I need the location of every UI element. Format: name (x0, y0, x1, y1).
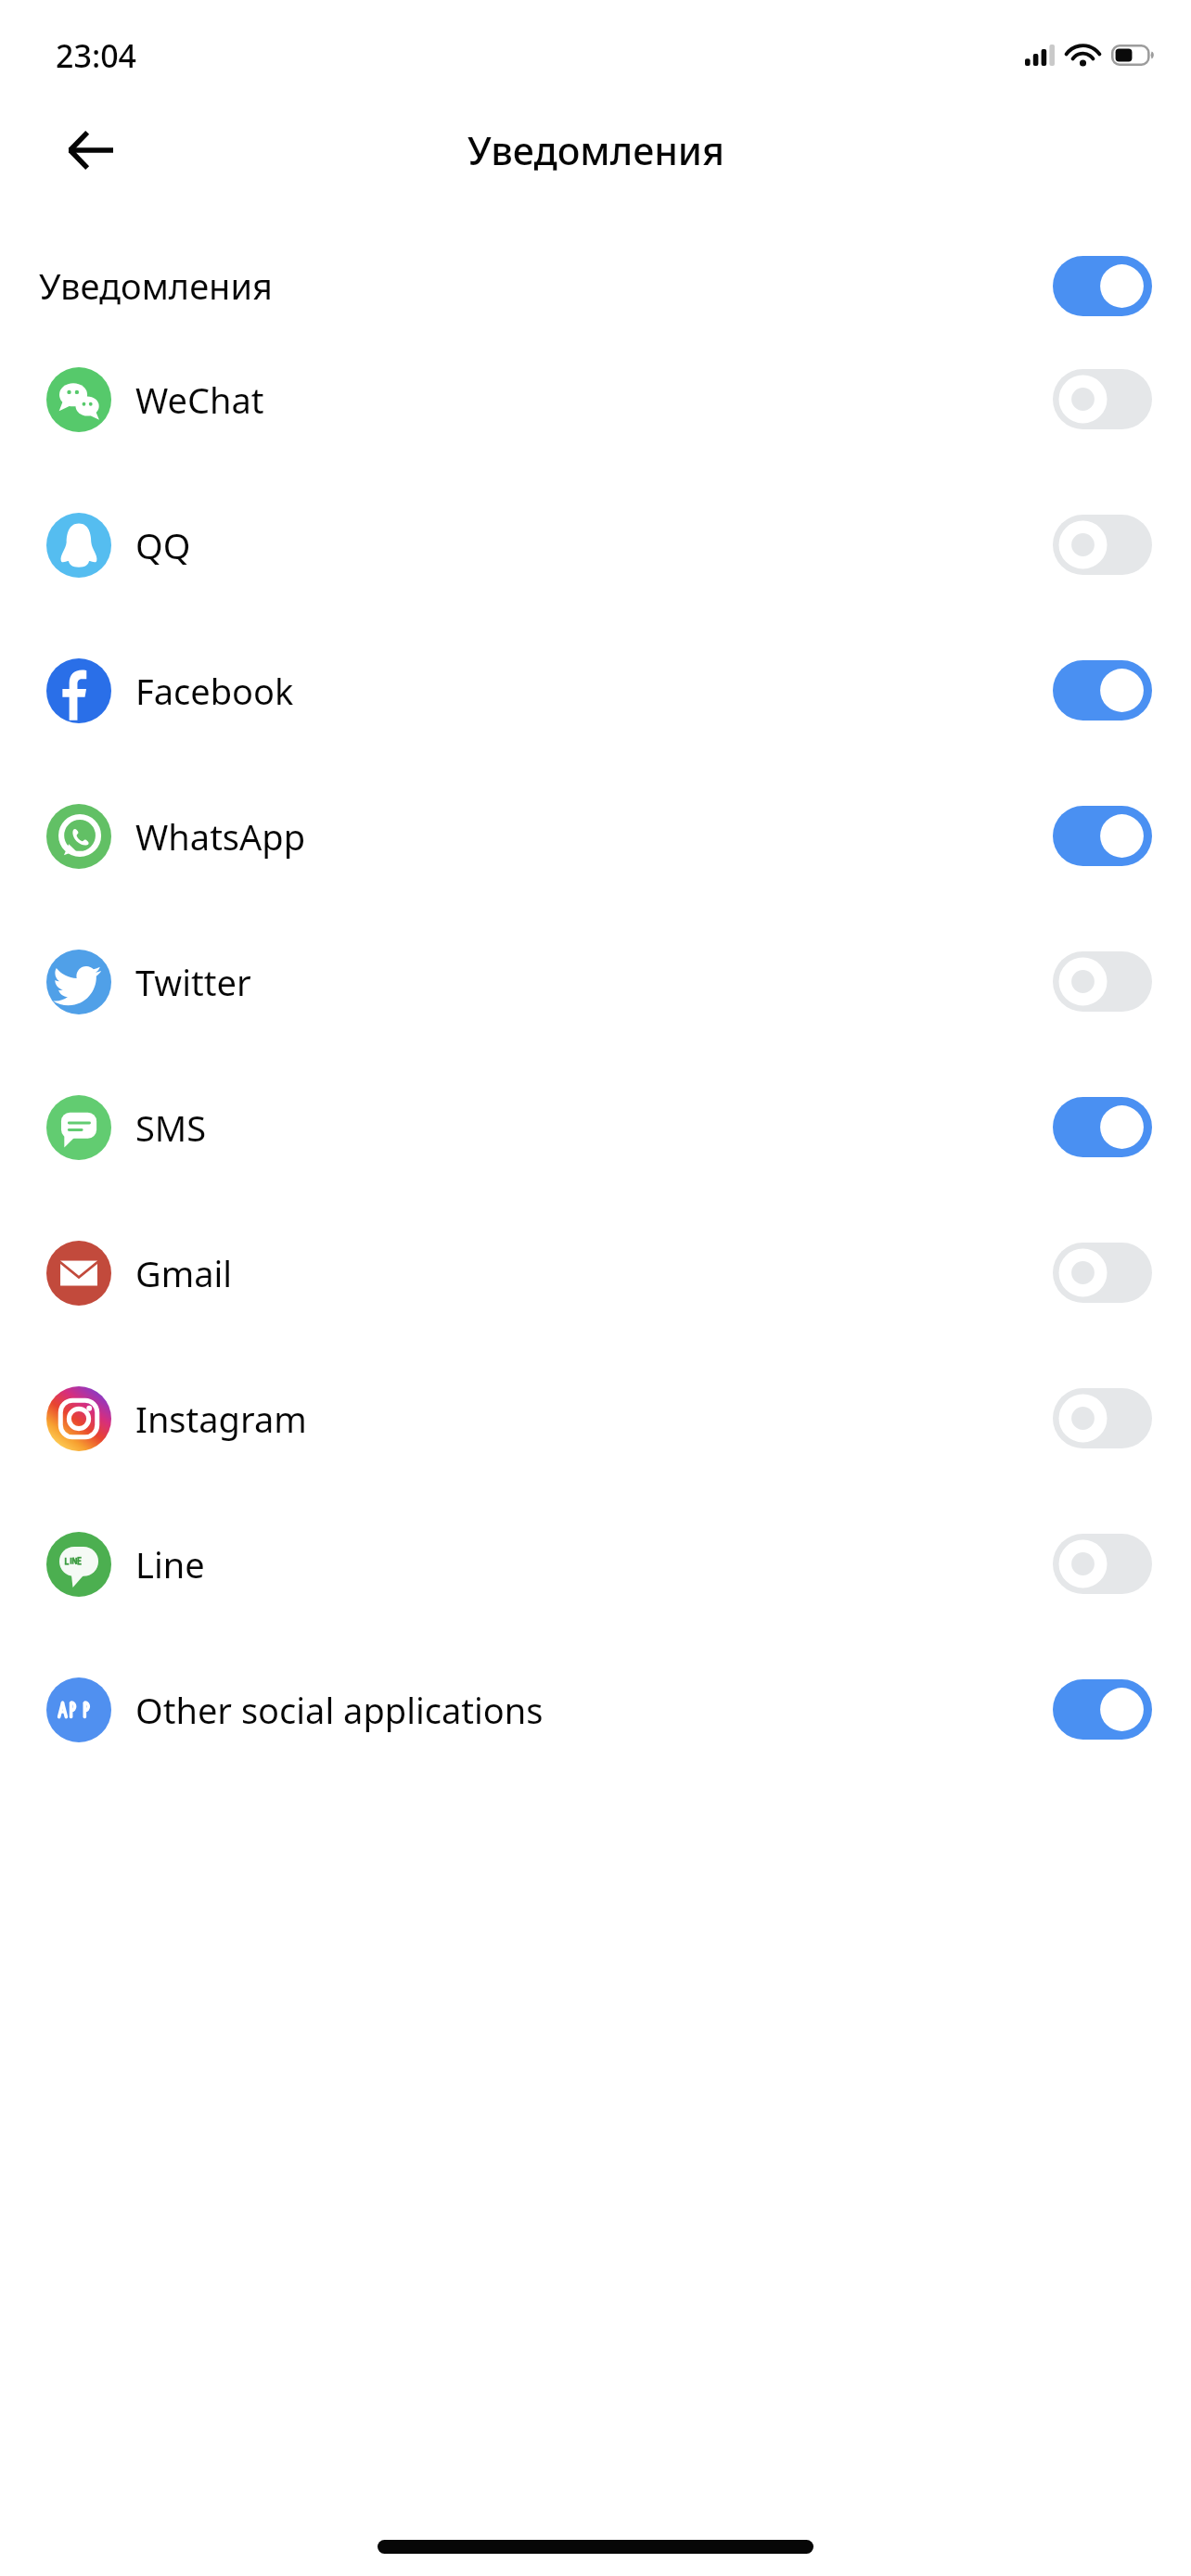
button[interactable]: Facebook switch (1053, 660, 1152, 721)
staticText: Other social applications (135, 1686, 544, 1734)
button[interactable]: Twitter (0, 909, 1191, 1054)
button[interactable]: QQ (0, 472, 1191, 618)
staticText: SMS (135, 1103, 207, 1152)
button[interactable]: SMS (0, 1054, 1191, 1200)
staticText: Twitter (135, 958, 251, 1006)
staticText: Уведомления (467, 124, 724, 176)
button[interactable]: Other social applications switch (1053, 1679, 1152, 1740)
button[interactable]: Instagram (0, 1345, 1191, 1491)
staticText: Facebook (135, 667, 294, 715)
button[interactable]: Gmail (0, 1200, 1191, 1345)
button[interactable]: WhatsApp (0, 763, 1191, 909)
button[interactable]: Line switch (1053, 1534, 1152, 1594)
button[interactable]: QQ switch (1053, 515, 1152, 575)
button[interactable]: Other social applications (0, 1637, 1191, 1782)
button[interactable]: Gmail switch (1053, 1243, 1152, 1303)
button[interactable]: Line (0, 1491, 1191, 1637)
button[interactable]: SMS switch (1053, 1097, 1152, 1157)
button[interactable]: WeChat switch (1053, 369, 1152, 429)
button[interactable]: WeChat (0, 326, 1191, 472)
button[interactable]: Уведомления (0, 245, 1191, 326)
staticText: QQ (135, 521, 191, 569)
staticText: Gmail (135, 1249, 233, 1297)
button[interactable]: Twitter switch (1053, 951, 1152, 1012)
button[interactable]: WhatsApp switch (1053, 806, 1152, 866)
staticText: 23:04 (56, 34, 137, 77)
staticText: WeChat (135, 376, 264, 424)
button[interactable]: Уведомления switch (1053, 256, 1152, 316)
button[interactable]: Facebook (0, 618, 1191, 763)
staticText: Line (135, 1540, 205, 1588)
staticText: Уведомления (39, 261, 273, 310)
staticText: WhatsApp (135, 812, 306, 861)
button[interactable]: Instagram switch (1053, 1388, 1152, 1448)
staticText: Instagram (135, 1395, 307, 1443)
button[interactable]: Back (46, 106, 135, 195)
